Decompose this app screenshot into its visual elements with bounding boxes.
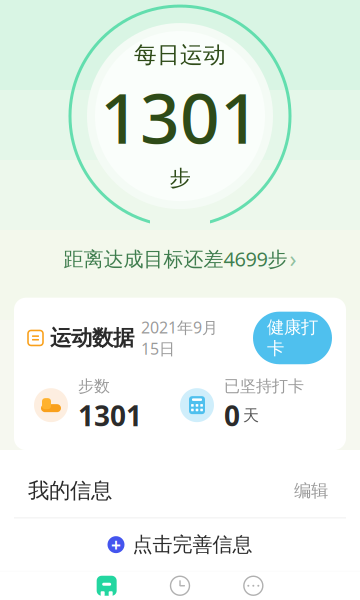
- staticText: 步数: [78, 376, 110, 396]
- staticText: 天: [243, 406, 259, 425]
- staticText: 2021年9月15日: [141, 317, 218, 359]
- staticText: 0: [224, 397, 240, 434]
- button[interactable]: 健康打卡: [253, 312, 332, 364]
- staticText: +: [111, 533, 121, 556]
- staticText: 距离达成目标还差4699步: [63, 245, 287, 272]
- staticText: 1301: [78, 397, 142, 434]
- button[interactable]: 距离达成目标还差4699步: [49, 234, 310, 284]
- staticText: ›: [289, 244, 296, 274]
- staticText: 已坚持打卡: [224, 376, 304, 396]
- staticText: 我的信息: [28, 478, 112, 504]
- staticText: 点击完善信息: [132, 532, 252, 557]
- button[interactable]: +: [14, 518, 346, 571]
- button[interactable]: 运动: [70, 569, 143, 600]
- staticText: 1301: [100, 71, 260, 163]
- staticText: 步: [169, 165, 190, 191]
- staticText: 每日运动: [134, 41, 226, 69]
- button[interactable]: 喝水: [143, 569, 217, 600]
- staticText: 健康打卡: [267, 317, 318, 359]
- button[interactable]: 我的: [217, 569, 290, 600]
- staticText: 编辑: [294, 480, 328, 501]
- button[interactable]: 编辑: [290, 476, 332, 505]
- staticText: 运动数据: [50, 325, 134, 351]
